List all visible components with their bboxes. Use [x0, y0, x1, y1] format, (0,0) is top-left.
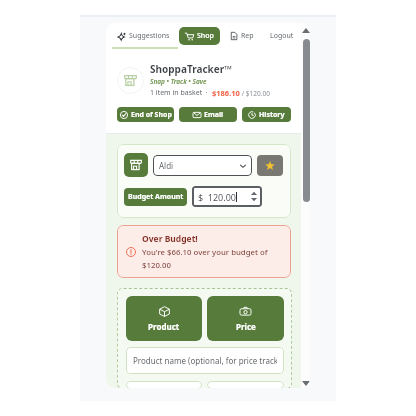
staticText: Product name (optional, for price tracki… — [133, 355, 277, 366]
button[interactable]: Suggestions — [112, 27, 176, 45]
staticText: $186.10 — [212, 88, 240, 98]
staticText: Price — [236, 321, 256, 332]
button[interactable] — [126, 381, 202, 388]
button[interactable]: Product name (optional, for price tracki… — [126, 347, 284, 374]
button[interactable]: Choose store — [124, 153, 148, 177]
button[interactable]: Budget Amount — [124, 188, 187, 206]
button[interactable]: Aldi — [153, 155, 252, 176]
staticText: $ 120.00 — [198, 191, 236, 203]
staticText: End of Shop — [131, 110, 172, 120]
button[interactable]: Price — [207, 296, 284, 341]
staticText: Rep — [241, 31, 254, 41]
button[interactable]: Email — [179, 107, 237, 122]
button[interactable]: Logout — [264, 27, 300, 45]
button[interactable]: History — [242, 107, 291, 122]
button[interactable]: Product — [126, 296, 202, 341]
staticText: History — [259, 110, 285, 120]
staticText: Aldi — [159, 160, 174, 171]
staticText: You're $66.10 over your budget of $120.0… — [142, 247, 271, 270]
staticText: ShoppaTracker™ — [150, 62, 232, 76]
button[interactable]: End of Shop — [117, 107, 174, 122]
button[interactable]: $ 120.00 — [192, 186, 262, 207]
staticText: Product — [148, 321, 180, 332]
staticText: 1 item in basket · — [150, 88, 212, 98]
staticText: Budget Amount — [128, 192, 184, 202]
staticText: Logout — [270, 31, 294, 41]
staticText: Over Budget! — [142, 233, 198, 245]
button[interactable]: Favourite store — [257, 155, 283, 176]
staticText: Email — [204, 110, 224, 120]
button[interactable]: Shop — [179, 27, 220, 45]
staticText: Shop — [197, 31, 214, 41]
staticText: Suggestions — [129, 31, 170, 41]
button[interactable] — [207, 381, 284, 388]
button[interactable]: Rep — [224, 27, 260, 45]
staticText: Snap • Track • Save — [150, 77, 207, 86]
staticText: / $120.00 — [240, 89, 270, 98]
